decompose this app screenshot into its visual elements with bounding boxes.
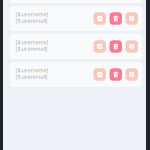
- button[interactable]: Edit: [93, 12, 106, 25]
- button[interactable]: Edit: [93, 40, 106, 53]
- button[interactable]: Delete: [109, 12, 122, 25]
- button[interactable]: Delete: [109, 40, 122, 53]
- staticText: [$.username]: [15, 67, 48, 74]
- staticText: [$.useremail]: [15, 45, 47, 52]
- button[interactable]: [$.username]: [9, 6, 142, 31]
- button[interactable]: Details: [125, 68, 138, 81]
- button[interactable]: Delete: [109, 68, 122, 81]
- staticText: [$.useremail]: [15, 17, 47, 24]
- button[interactable]: [$.username]: [9, 34, 142, 59]
- staticText: [$.username]: [15, 11, 48, 18]
- button[interactable]: [$.username]: [9, 62, 142, 87]
- staticText: [$.username]: [15, 39, 48, 46]
- button[interactable]: Edit: [93, 68, 106, 81]
- button[interactable]: Details: [125, 12, 138, 25]
- staticText: [$.useremail]: [15, 73, 47, 80]
- button[interactable]: Details: [125, 40, 138, 53]
